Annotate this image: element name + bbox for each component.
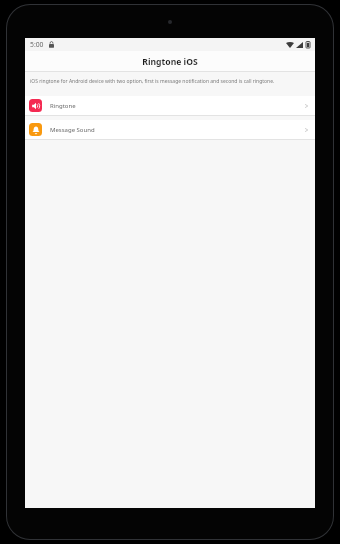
staticText: iOS ringtone for Android device with two… [30, 78, 275, 85]
staticText: Ringtone [50, 102, 76, 110]
staticText: Message Sound [50, 126, 95, 134]
staticText: Ringtone iOS [142, 56, 198, 68]
staticText: 5:00 [30, 40, 44, 49]
other: Open Message Sound [304, 126, 309, 134]
button[interactable]: Message Sound [25, 120, 315, 139]
button[interactable]: Ringtone [25, 96, 315, 115]
other: Open Ringtone [304, 102, 309, 110]
